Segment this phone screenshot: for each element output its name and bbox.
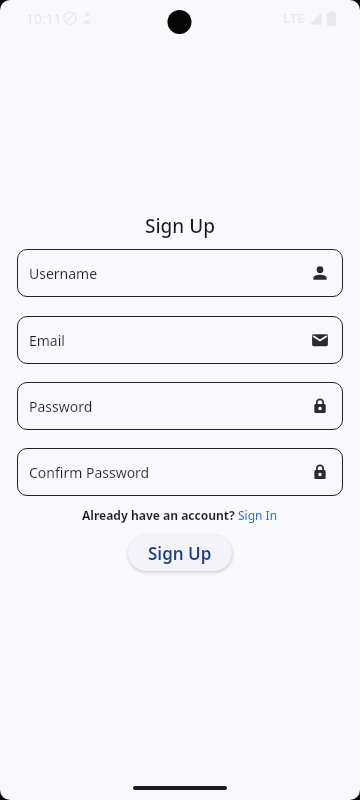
staticText: Sign In — [238, 507, 278, 523]
staticText: Sign Up — [148, 542, 212, 565]
staticText: Email — [29, 331, 65, 350]
button[interactable]: Password — [17, 382, 343, 430]
button[interactable]: Email — [17, 316, 343, 364]
staticText: Confirm Password — [29, 463, 150, 482]
staticText: Sign Up — [145, 213, 216, 239]
staticText: LTE — [283, 9, 305, 27]
staticText: 10:11 — [26, 9, 62, 28]
staticText: Username — [29, 264, 98, 283]
staticText: Password — [29, 397, 93, 416]
button[interactable]: Username — [17, 249, 343, 297]
button[interactable]: Confirm Password — [17, 448, 343, 496]
staticText: Already have an account? — [82, 507, 238, 523]
button[interactable]: Already have an account? — [82, 507, 278, 523]
button[interactable]: Sign Up — [128, 535, 232, 571]
